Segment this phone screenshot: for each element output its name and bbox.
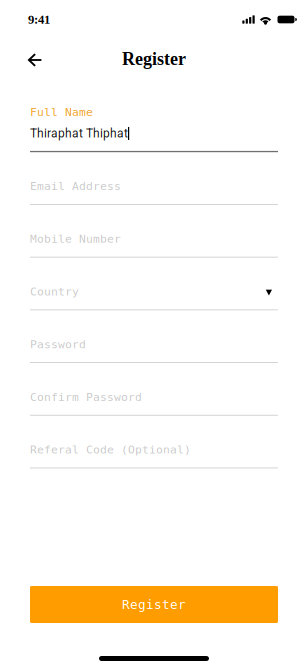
button[interactable]: Confirm Password	[30, 363, 278, 416]
button[interactable]: Password	[30, 310, 278, 363]
button[interactable]: Email Address	[30, 152, 278, 205]
staticText: 9:41	[28, 12, 50, 26]
staticText: Register	[122, 597, 186, 612]
button[interactable]: Referal Code (Optional)	[30, 416, 278, 468]
staticText: Confirm Password	[30, 390, 142, 404]
button[interactable]: Full Name	[30, 99, 278, 152]
staticText: Email Address	[30, 180, 121, 193]
staticText: Register	[122, 49, 186, 69]
staticText: Referal Code (Optional)	[30, 443, 191, 456]
staticText: Country	[30, 285, 79, 298]
button[interactable]: Mobile Number	[30, 205, 278, 258]
button[interactable]: Back	[0, 42, 54, 72]
button[interactable]: Register	[30, 586, 278, 623]
staticText: Thiraphat Thiphat	[30, 126, 128, 141]
button[interactable]: Country	[30, 258, 278, 310]
staticText: Password	[30, 338, 86, 351]
staticText: Mobile Number	[30, 232, 121, 245]
staticText: Full Name	[30, 105, 93, 119]
